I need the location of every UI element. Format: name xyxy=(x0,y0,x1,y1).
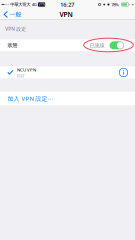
staticText: NCU VPN xyxy=(17,67,36,73)
staticText: 中華大哥大 xyxy=(10,2,30,7)
staticText: VPN 設定 xyxy=(5,25,26,32)
staticText: VPN xyxy=(59,10,72,19)
staticText: 16:27 xyxy=(60,1,74,8)
staticText: 4G xyxy=(32,2,37,7)
staticText: 已連線 xyxy=(89,42,104,49)
staticText: 狀態 xyxy=(7,42,17,48)
staticText: 78% xyxy=(111,2,119,7)
button[interactable]: NCU VPN xyxy=(0,66,135,79)
staticText: ✦ xyxy=(102,2,105,7)
staticText: 一般 xyxy=(9,10,21,18)
button[interactable]: 一般 xyxy=(0,9,23,20)
staticText: 自訂 xyxy=(17,73,25,78)
staticText: 加入 VPN 設定⋯ xyxy=(7,94,53,102)
staticText: ⌁ xyxy=(131,2,133,7)
button[interactable]: 加入 VPN 設定⋯ xyxy=(0,92,135,105)
staticText: VPN xyxy=(39,2,45,7)
